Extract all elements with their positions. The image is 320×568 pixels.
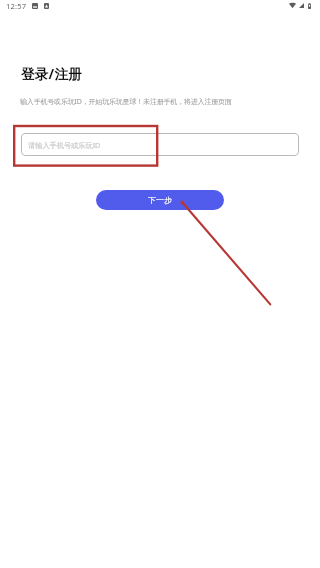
other: Battery [308, 3, 311, 9]
button[interactable]: 请输入手机号或乐玩ID [21, 133, 299, 156]
other: Signal [299, 3, 304, 8]
staticText: 输入手机号或乐玩ID，开始玩乐玩星球！未注册手机，将进入注册页面 [20, 97, 232, 107]
other: Wi-Fi [289, 3, 296, 8]
staticText: 下一步 [148, 195, 172, 205]
staticText: 请输入手机号或乐玩ID [28, 140, 101, 150]
button[interactable]: 下一步 [96, 190, 224, 210]
staticText: 12:57 [6, 1, 27, 11]
staticText: 登录/注册 [21, 64, 83, 83]
other: Notification [44, 3, 49, 9]
other: Notification [32, 3, 38, 9]
